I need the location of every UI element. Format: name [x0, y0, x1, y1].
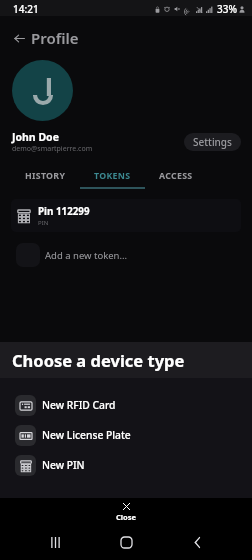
- button[interactable]: Pin 112299: [11, 199, 241, 232]
- button[interactable]: TOKENS: [80, 167, 145, 189]
- button[interactable]: ACCESS: [145, 167, 207, 189]
- button[interactable]: New PIN: [0, 450, 252, 480]
- button[interactable]: Back: [8, 27, 30, 49]
- staticText: New PIN: [42, 458, 85, 472]
- staticText: demo@smartpierre.com: [12, 144, 93, 154]
- staticText: ACCESS: [159, 170, 193, 182]
- button[interactable]: Home: [112, 528, 140, 556]
- button[interactable]: New RFID Card: [0, 390, 252, 420]
- button[interactable]: Settings: [184, 133, 241, 151]
- staticText: New License Plate: [42, 428, 131, 442]
- button[interactable]: Recents: [41, 528, 69, 556]
- staticText: Choose a device type: [12, 349, 185, 371]
- button[interactable]: Add a new token...: [16, 243, 241, 267]
- button[interactable]: Back: [183, 528, 211, 556]
- staticText: TOKENS: [94, 170, 131, 182]
- staticText: Settings: [193, 135, 232, 149]
- staticText: HISTORY: [25, 170, 66, 182]
- staticText: 33%: [217, 2, 237, 16]
- button[interactable]: HISTORY: [11, 167, 80, 189]
- button[interactable]: Close: [116, 503, 136, 522]
- staticText: Add a new token...: [45, 249, 128, 262]
- staticText: John Doe: [12, 130, 59, 144]
- staticText: PIN: [38, 219, 49, 227]
- staticText: Pin 112299: [38, 205, 90, 218]
- button[interactable]: New License Plate: [0, 420, 252, 450]
- staticText: 14:21: [13, 2, 39, 16]
- staticText: Close: [116, 512, 136, 522]
- staticText: New RFID Card: [42, 398, 116, 412]
- staticText: Profile: [31, 28, 79, 48]
- button[interactable]: Avatar: [12, 60, 73, 121]
